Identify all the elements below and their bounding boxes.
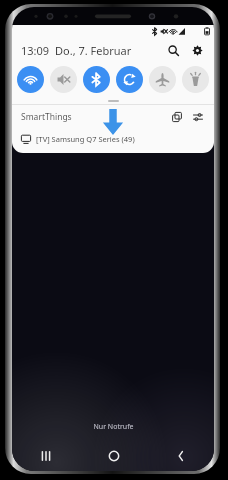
button[interactable]: Search <box>164 41 182 59</box>
button[interactable]: Flugmodus <box>149 66 176 93</box>
staticText: 13:09 <box>21 43 50 58</box>
staticText: Nur Notrufe <box>93 422 134 432</box>
button[interactable]: Automatisch drehen <box>116 66 143 93</box>
button[interactable]: Settings <box>188 41 206 59</box>
button[interactable]: Einstellungen <box>190 109 206 125</box>
button[interactable]: Taschenlampe <box>182 66 209 93</box>
button[interactable]: Bluetooth <box>83 66 110 93</box>
button[interactable]: WLAN <box>17 66 44 93</box>
button[interactable]: Ton aus <box>50 66 77 93</box>
button[interactable]: Geräte hinzufügen <box>169 109 185 125</box>
staticText: SmartThings <box>21 111 72 123</box>
button[interactable]: [TV] Samsung Q7 Series (49) <box>21 129 214 149</box>
button[interactable]: Startbildschirm <box>80 443 147 469</box>
staticText: [TV] Samsung Q7 Series (49) <box>36 134 135 144</box>
button[interactable]: Letzte Apps <box>12 443 80 469</box>
button[interactable]: Zurück <box>147 443 214 469</box>
staticText: Do., 7. Februar <box>55 43 132 58</box>
